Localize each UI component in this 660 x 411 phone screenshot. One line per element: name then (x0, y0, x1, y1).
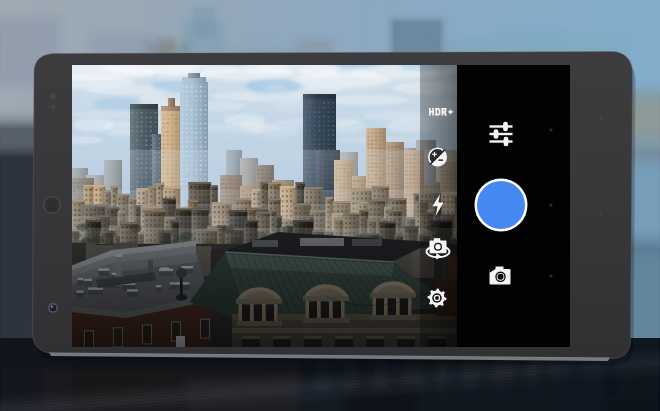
button[interactable]: Settings (422, 283, 453, 313)
button[interactable]: HDR plus (420, 98, 457, 126)
button[interactable]: Shutter (472, 176, 531, 235)
button[interactable]: Camera mode (481, 258, 520, 295)
button[interactable]: Switch camera (422, 235, 455, 265)
button[interactable]: Tune (483, 116, 520, 153)
button[interactable]: Exposure (423, 143, 452, 172)
button[interactable]: Flash (424, 190, 452, 220)
